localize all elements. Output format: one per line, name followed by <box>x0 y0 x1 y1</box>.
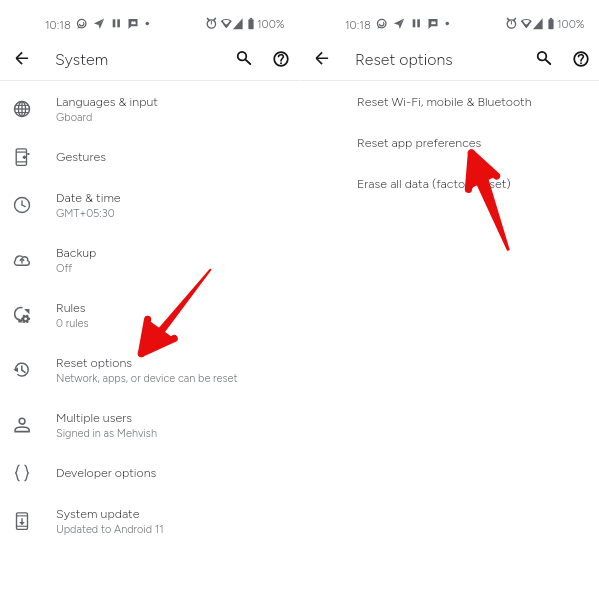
button[interactable]: System update <box>0 493 299 548</box>
staticText: Rules <box>56 300 86 315</box>
staticText: Date & time <box>56 190 121 205</box>
staticText: Developer options <box>56 465 157 480</box>
staticText: GMT+05:30 <box>56 207 115 220</box>
staticText: System update <box>56 506 140 521</box>
button[interactable]: Developer options <box>0 452 299 493</box>
button[interactable]: Back <box>308 44 336 72</box>
button[interactable]: Help <box>267 45 295 73</box>
staticText: Languages & input <box>56 94 158 109</box>
staticText: Updated to Android 11 <box>56 523 164 536</box>
button[interactable]: Backup <box>0 232 299 287</box>
button[interactable]: Help <box>567 45 595 73</box>
staticText: Signed in as Mehvish <box>56 427 157 440</box>
staticText: Backup <box>56 245 97 260</box>
button[interactable]: Search <box>528 43 556 71</box>
staticText: 10:18 <box>45 18 71 31</box>
button[interactable]: Date & time <box>0 177 299 232</box>
button[interactable]: Gestures <box>0 136 299 177</box>
button[interactable]: Languages & input <box>0 81 299 136</box>
staticText: 100% <box>257 17 285 30</box>
button[interactable]: Reset Wi-Fi, mobile & Bluetooth <box>300 81 599 122</box>
staticText: Reset options <box>56 355 133 370</box>
staticText: Off <box>56 262 73 275</box>
button[interactable]: Rules <box>0 287 299 342</box>
staticText: 10:18 <box>345 18 371 31</box>
button[interactable]: Reset app preferences <box>300 122 599 163</box>
staticText: System <box>55 50 109 69</box>
button[interactable]: Multiple users <box>0 397 299 452</box>
staticText: Reset app preferences <box>357 135 482 150</box>
staticText: Erase all data (factory reset) <box>357 176 511 191</box>
staticText: Reset options <box>355 50 453 69</box>
button[interactable]: Reset options <box>0 342 299 397</box>
staticText: Gboard <box>56 111 93 124</box>
button[interactable]: Search <box>228 43 256 71</box>
staticText: Gestures <box>56 149 106 164</box>
staticText: Network, apps, or device can be reset <box>56 372 238 385</box>
staticText: Reset Wi-Fi, mobile & Bluetooth <box>357 94 532 109</box>
button[interactable]: Erase all data (factory reset) <box>300 163 599 204</box>
staticText: Multiple users <box>56 410 133 425</box>
staticText: 0 rules <box>56 317 89 330</box>
button[interactable]: Back <box>8 44 36 72</box>
staticText: 100% <box>557 17 585 30</box>
